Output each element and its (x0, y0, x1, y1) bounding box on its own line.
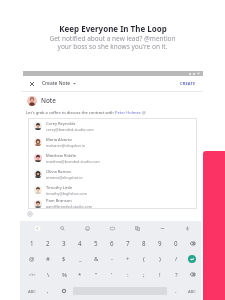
staticText: 3 (62, 239, 66, 247)
button[interactable]: Maria Alvarez (28, 134, 197, 150)
staticText: Create Note (42, 80, 71, 87)
button[interactable]: _ (72, 251, 88, 267)
button[interactable]: @ (24, 251, 40, 267)
staticText: ABC (28, 289, 36, 294)
button[interactable]: Back (24, 221, 50, 235)
button[interactable]: ; (136, 267, 152, 282)
staticText: ) (159, 255, 161, 263)
staticText: =\< (29, 272, 36, 278)
staticText: $ (62, 255, 66, 263)
staticText: ? (175, 271, 178, 279)
staticText: Matthew Riddle (46, 153, 77, 159)
staticText: , (47, 287, 49, 295)
button[interactable]: Matthew Riddle (28, 150, 197, 166)
button[interactable]: ABC (24, 282, 40, 300)
staticText: 0 (174, 239, 178, 247)
other: Backspace (190, 272, 195, 277)
staticText: / (175, 255, 178, 263)
button[interactable]: 2 (40, 235, 56, 251)
button[interactable]: Olivia Ramos (28, 166, 197, 182)
button[interactable]: & (88, 251, 104, 267)
button[interactable]: 6 (104, 235, 120, 251)
staticText: \ (47, 271, 50, 279)
button[interactable]: Stickers (75, 221, 100, 235)
staticText: @ (141, 110, 146, 116)
button[interactable]: ABC (184, 282, 200, 300)
button[interactable]: # (40, 251, 56, 267)
button[interactable]: " (88, 267, 104, 282)
staticText: CREATE (180, 81, 196, 86)
button[interactable]: % (56, 267, 72, 282)
button[interactable]: / (168, 251, 184, 267)
button[interactable]: ( (136, 251, 152, 267)
button[interactable]: 4 (72, 235, 88, 251)
button[interactable]: Create Note (42, 80, 76, 87)
button[interactable]: Timothy Little (28, 182, 197, 198)
staticText: Get notified about a new lead? @mention … (49, 34, 176, 51)
staticText: malvarez@slingshot.io (46, 143, 85, 148)
staticText: Pam Branson (46, 198, 72, 204)
staticText: Timothy Little (46, 185, 73, 191)
button[interactable]: Translate (125, 221, 150, 235)
staticText: 4 (78, 239, 82, 247)
staticText: # (46, 255, 50, 263)
staticText: & (94, 255, 99, 263)
staticText: ! (159, 271, 161, 279)
button[interactable]: : (120, 267, 136, 282)
staticText: timothy@bigfishco.com (46, 191, 87, 196)
button[interactable]: 1 (24, 235, 40, 251)
button[interactable]: \ (40, 267, 56, 282)
staticText: @ (29, 255, 35, 263)
button[interactable]: ! (152, 267, 168, 282)
button[interactable]: 5 (88, 235, 104, 251)
button[interactable]: 3 (56, 235, 72, 251)
button[interactable]: Search (50, 221, 75, 235)
button[interactable]: ) (152, 251, 168, 267)
staticText: Corey Reynolds (46, 121, 76, 127)
staticText: Note (41, 96, 56, 105)
button[interactable]: CREATE (180, 76, 203, 91)
staticText: ABC (188, 289, 196, 294)
button[interactable]: , (40, 282, 56, 300)
staticText: 1 (30, 239, 34, 247)
staticText: * (78, 271, 82, 279)
button[interactable]: ' (104, 267, 120, 282)
button[interactable]: GIF (100, 221, 125, 235)
button[interactable]: Close (21, 76, 42, 91)
button[interactable]: - (104, 251, 120, 267)
staticText: - (111, 255, 113, 263)
staticText: 5 (94, 239, 98, 247)
button[interactable]: Enter (184, 251, 200, 267)
staticText: 7 (126, 239, 130, 247)
button[interactable]: =\< (24, 267, 40, 282)
button[interactable]: 8 (136, 235, 152, 251)
button[interactable]: Backspace (184, 235, 200, 251)
staticText: ' (111, 271, 113, 279)
button[interactable]: ? (168, 267, 184, 282)
staticText: pam@branded-studio.com (46, 204, 93, 209)
button[interactable]: Clipboard (150, 221, 175, 235)
button[interactable]: Backspace (184, 267, 200, 282)
staticText: 6 (110, 239, 114, 247)
staticText: matthew@branded-studio.com (46, 159, 100, 164)
button[interactable]: * (72, 267, 88, 282)
button[interactable]: Corey Reynolds (28, 118, 197, 134)
button[interactable]: 9 (152, 235, 168, 251)
button[interactable]: + (120, 251, 136, 267)
button[interactable]: $ (56, 251, 72, 267)
button[interactable]: 7 (120, 235, 136, 251)
staticText: % (62, 271, 67, 279)
staticText: Let's grab a coffee to discuss the contr… (26, 110, 115, 116)
staticText: oramos@slingshot.io (46, 175, 83, 180)
button[interactable]: Pam Branson (28, 198, 197, 209)
button[interactable]: Emoji (56, 282, 72, 300)
button[interactable]: Settings (175, 221, 200, 235)
staticText: . (175, 287, 177, 295)
staticText: 2 (46, 239, 50, 247)
staticText: corey@branded-studio.com (46, 127, 94, 132)
staticText: Olivia Ramos (46, 169, 71, 175)
staticText: ( (143, 255, 145, 263)
button[interactable]: 0 (168, 235, 184, 251)
